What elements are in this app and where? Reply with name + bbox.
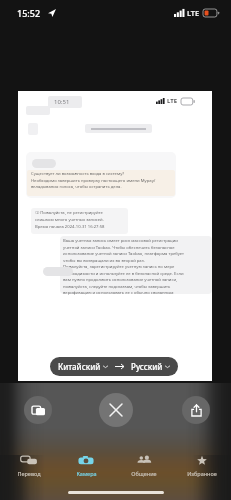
staticText: Камера <box>76 470 97 477</box>
staticText: пожалуйста, следуйте подсказкам, чтобы з… <box>63 284 171 290</box>
staticText: чтобы вы возвращали их во второй раз. <box>63 258 145 264</box>
staticText: 10:51 <box>54 98 70 106</box>
staticText: Перевод <box>17 470 41 477</box>
staticText: вам нужно продолжить использование учетн… <box>63 277 178 283</box>
staticText: учетной записи Taobao. Чтобы обеспечить … <box>63 245 175 251</box>
button[interactable]: Китайский <box>50 357 178 376</box>
staticText: Пожалуйста, зарегистрируйте учетную запи… <box>63 264 175 270</box>
staticText: LTE <box>167 97 178 105</box>
button[interactable]: Избранное <box>173 452 231 478</box>
staticText: Время начала 2024-10-31 16:27:58 <box>35 224 105 230</box>
staticText: LTE <box>187 8 200 18</box>
staticText: ⓘ Пожалуйста, не регистрируйте <box>35 210 103 216</box>
staticText: Русский <box>131 361 163 372</box>
staticText: Ваша учетная запись имеет риск массовой … <box>63 238 178 244</box>
staticText: Необходимо завершить проверку настоящего… <box>31 178 156 184</box>
staticText: Общение <box>131 470 157 477</box>
staticText: Избранное <box>187 470 217 477</box>
staticText: использование учетной записи Taobao, пла… <box>63 251 184 257</box>
button[interactable]: Общение <box>115 452 173 478</box>
staticText: Существует ли возможность входа в систем… <box>31 171 125 177</box>
staticText: вкладывания голоса, чтобы остранить дела… <box>31 184 122 190</box>
button[interactable]: Share <box>182 396 210 424</box>
staticText: слишком много учетных записей. <box>35 217 104 223</box>
staticText: необходимости и используйте ее в безопас… <box>63 271 184 277</box>
staticText: верификацию и использовать ее с обычно с… <box>63 290 174 296</box>
button[interactable]: Gallery <box>24 396 52 424</box>
staticText: Китайский <box>58 361 101 372</box>
button[interactable]: Перевод <box>0 452 57 478</box>
button[interactable]: Close <box>99 393 133 427</box>
button[interactable]: Камера <box>57 452 115 478</box>
staticText: 15:52 <box>17 7 41 19</box>
